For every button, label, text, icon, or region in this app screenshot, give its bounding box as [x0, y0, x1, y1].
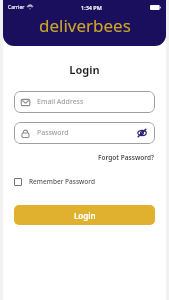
button[interactable]: Login	[14, 205, 155, 225]
staticText: Login	[14, 62, 155, 77]
button[interactable]: Forgot Password?	[14, 153, 155, 162]
staticText: Carrier	[8, 4, 25, 11]
staticText: Login	[74, 210, 96, 221]
staticText: Email Address	[37, 97, 84, 107]
button[interactable]: Email Address	[14, 91, 155, 113]
staticText: Remember Password	[29, 177, 95, 186]
button[interactable]: Remember Password	[14, 175, 95, 188]
staticText: Password	[37, 128, 69, 138]
staticText: deliverbees	[39, 14, 131, 37]
staticText: Forgot Password?	[98, 153, 155, 162]
button[interactable]: Show password	[136, 127, 148, 139]
button[interactable]: Password	[14, 122, 155, 144]
staticText: 1:34 PM	[81, 4, 102, 11]
